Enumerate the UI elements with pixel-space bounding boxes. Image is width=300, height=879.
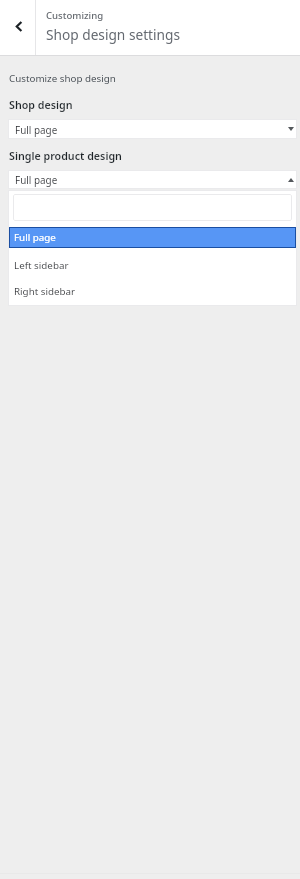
staticText: Full page — [15, 173, 58, 186]
staticText: Single product design — [9, 149, 122, 164]
button[interactable] — [13, 194, 292, 221]
staticText: Customize shop design — [9, 72, 116, 85]
button[interactable]: Full page — [8, 170, 297, 189]
button[interactable]: Right sidebar — [9, 278, 296, 304]
button[interactable]: Left sidebar — [9, 252, 296, 278]
staticText: Full page — [15, 123, 58, 136]
button[interactable]: Full page — [8, 119, 297, 139]
staticText: Right sidebar — [14, 285, 76, 298]
staticText: Shop design — [9, 98, 73, 113]
button[interactable]: Full page — [9, 227, 296, 248]
staticText: Shop design settings — [46, 25, 181, 44]
staticText: Customizing — [46, 9, 104, 22]
staticText: Left sidebar — [14, 259, 69, 272]
staticText: Full page — [14, 231, 56, 244]
button[interactable]: Back — [0, 0, 33, 55]
